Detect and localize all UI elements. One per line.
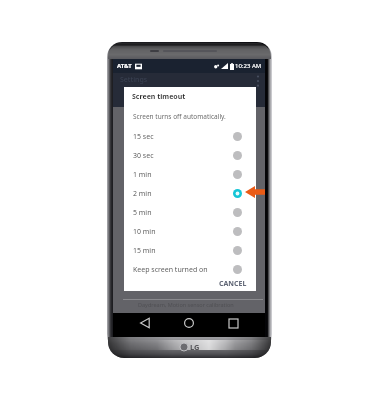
button[interactable]: Back — [133, 311, 157, 335]
button[interactable]: Keep screen turned on — [124, 260, 256, 279]
button[interactable]: 15 min — [124, 241, 256, 260]
staticText: Keep screen turned on — [133, 265, 233, 275]
staticText: 2 min — [133, 189, 233, 199]
staticText: CANCEL — [219, 279, 247, 289]
button[interactable]: Home — [177, 311, 201, 335]
button[interactable]: Recent apps — [221, 311, 245, 335]
staticText: Daydream, Motion sensor calibration — [138, 301, 234, 308]
staticText: 10 min — [133, 227, 233, 237]
button[interactable]: 5 min — [124, 203, 256, 222]
staticText: Screen turns off automatically. — [133, 112, 226, 121]
button[interactable]: 2 min — [124, 184, 256, 203]
button[interactable]: 10 min — [124, 222, 256, 241]
button[interactable]: 15 sec — [124, 127, 256, 146]
staticText: LG — [190, 342, 200, 352]
staticText: 15 sec — [133, 132, 233, 142]
staticText: 10:23 AM — [235, 62, 262, 70]
staticText: 1 min — [133, 170, 233, 180]
staticText: Settings — [120, 75, 148, 85]
staticText: 30 sec — [133, 151, 233, 161]
staticText: Screen timeout — [132, 92, 186, 102]
button[interactable]: CANCEL — [210, 276, 256, 291]
button[interactable]: 1 min — [124, 165, 256, 184]
button[interactable]: 30 sec — [124, 146, 256, 165]
staticText: AT&T — [117, 62, 132, 70]
staticText: 5 min — [133, 208, 233, 218]
staticText: 15 min — [133, 246, 233, 256]
